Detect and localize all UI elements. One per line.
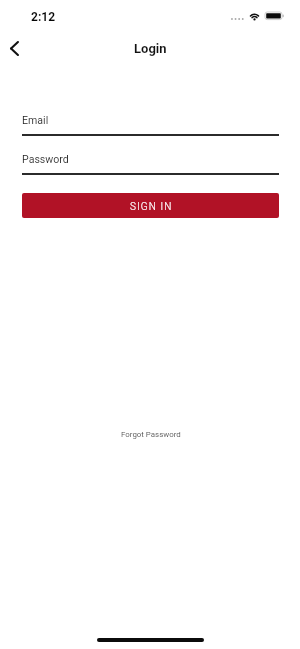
button[interactable]: SIGN IN [22,193,279,218]
staticText: Email [22,114,49,126]
button[interactable]: Email [22,114,279,136]
staticText: Password [22,153,69,165]
staticText: SIGN IN [130,201,173,213]
button[interactable]: Back [0,34,28,62]
button[interactable]: Password [22,153,279,175]
staticText: Forgot Password [121,430,181,439]
button[interactable]: Forgot Password [117,428,185,441]
staticText: Login [134,41,167,56]
staticText: 2:12 [31,10,56,24]
